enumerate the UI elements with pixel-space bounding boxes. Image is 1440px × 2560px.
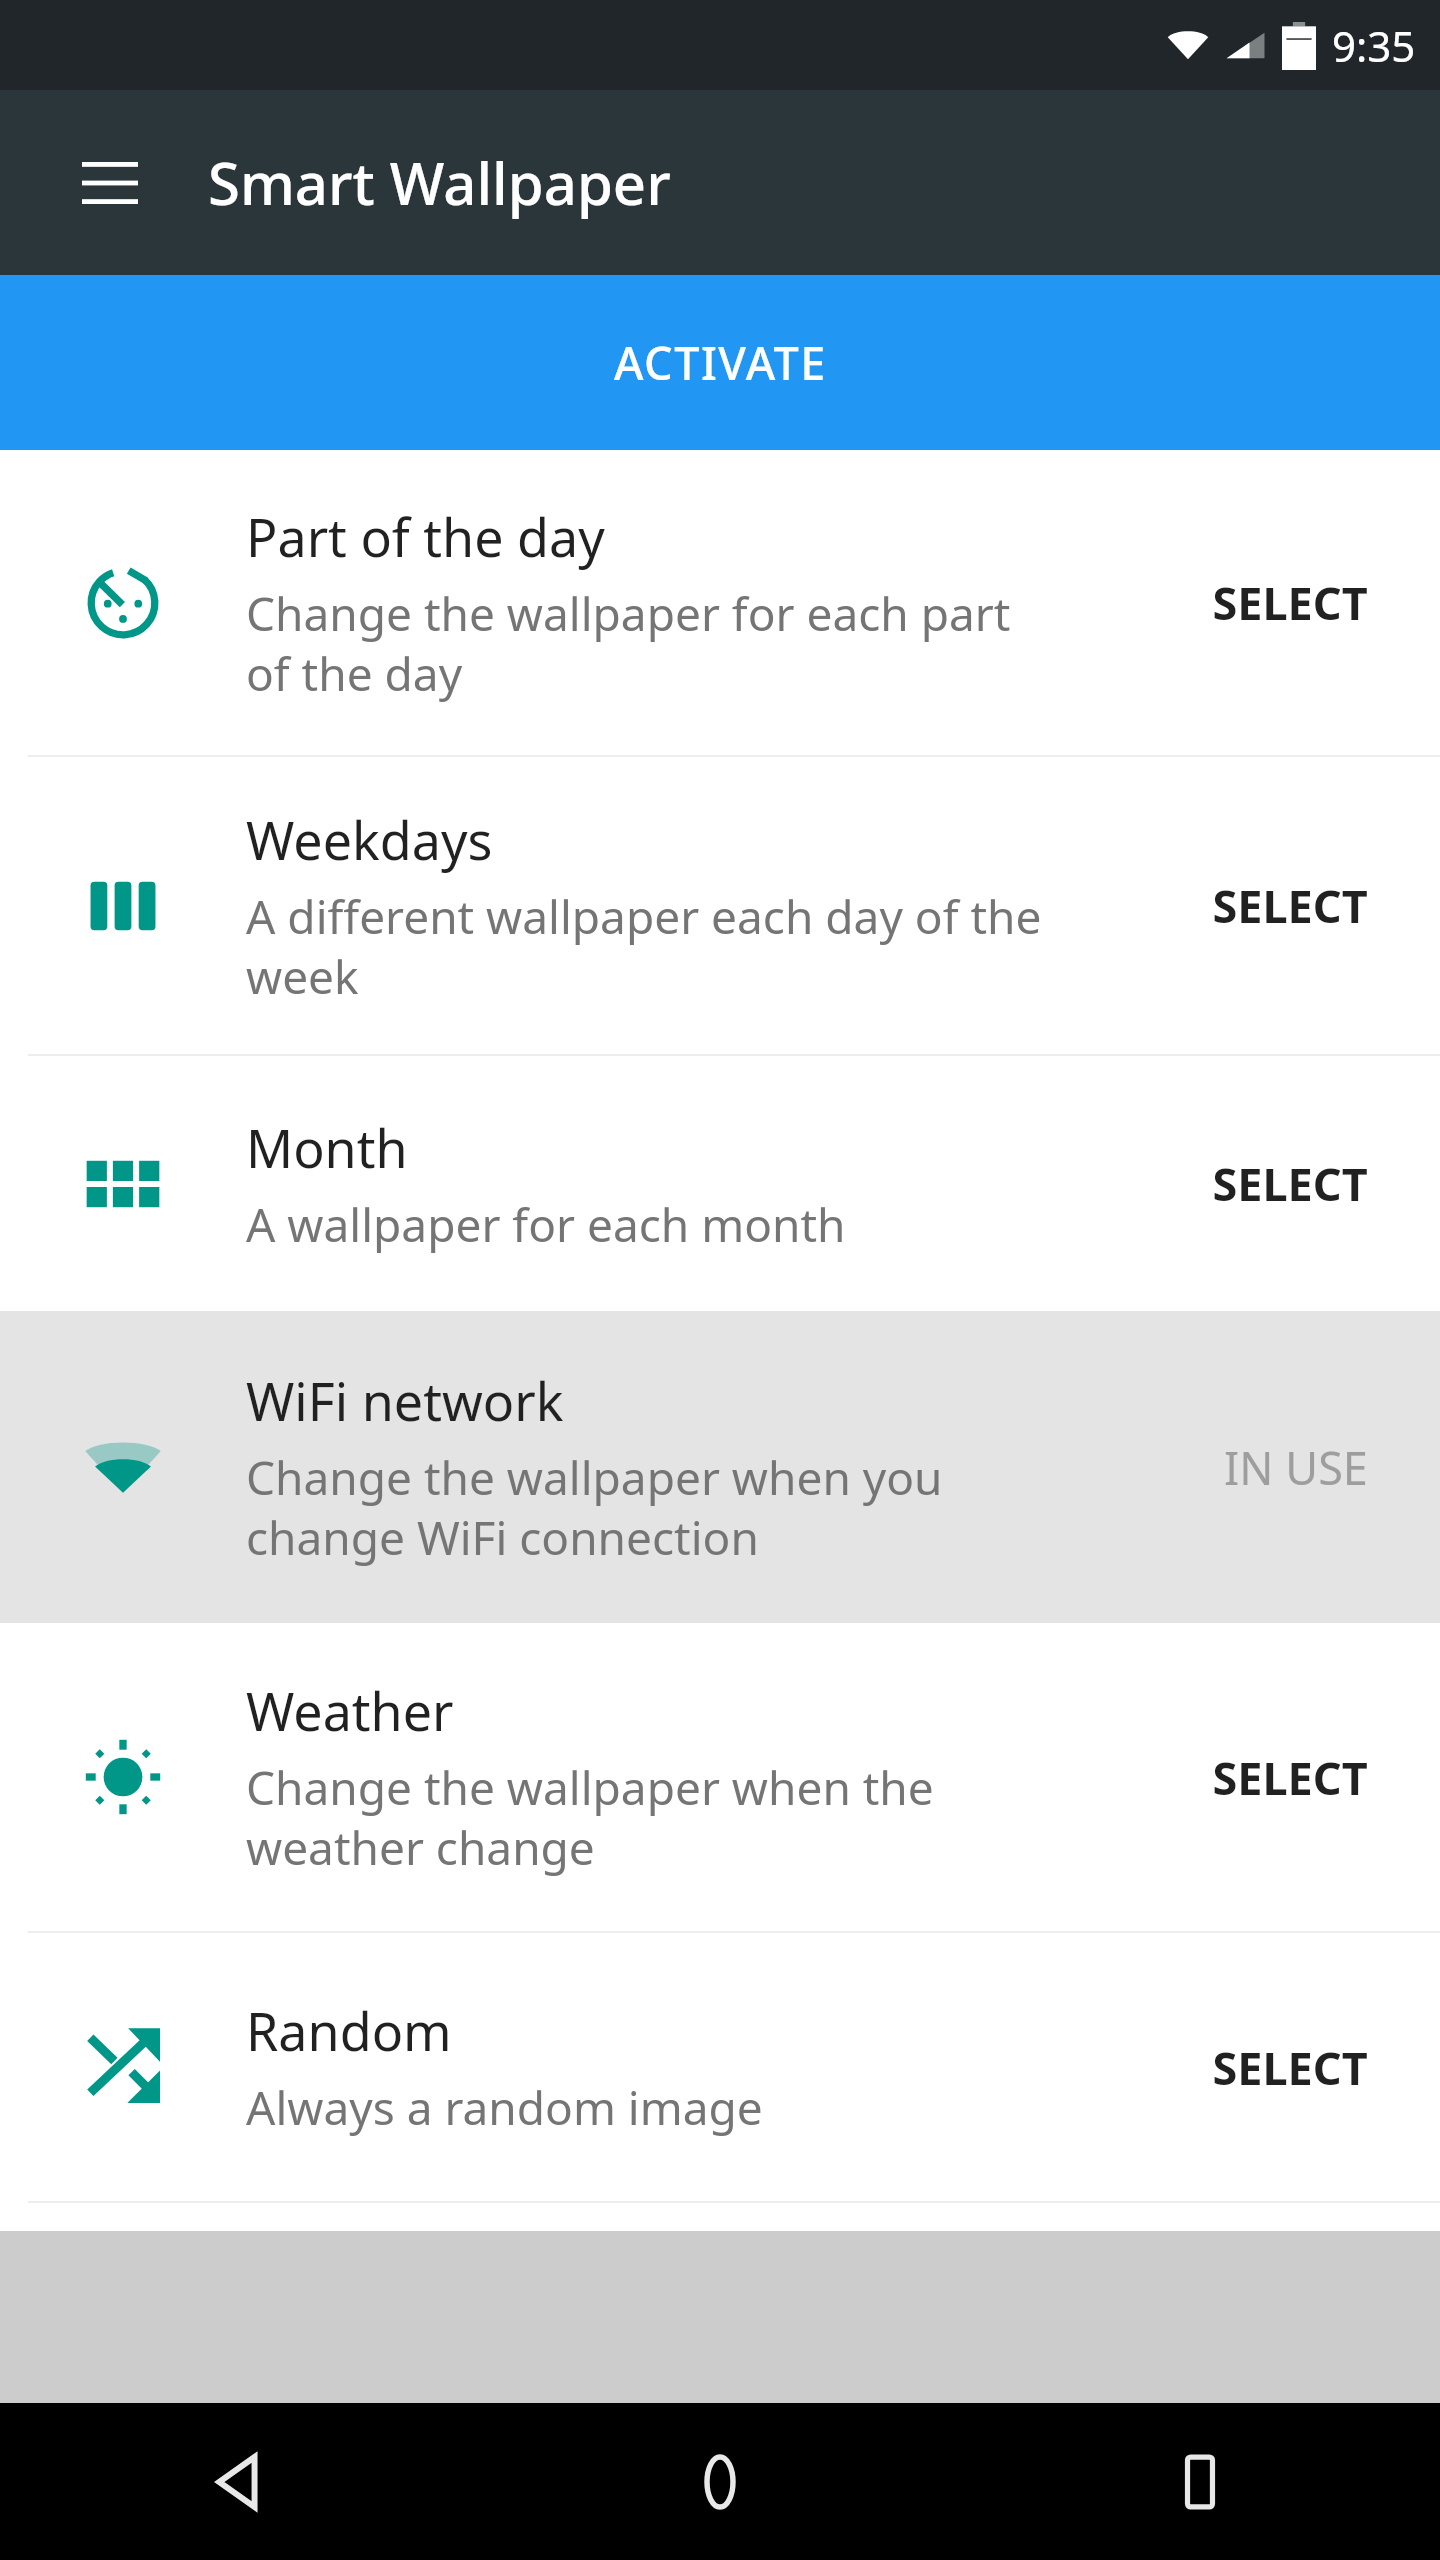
staticText: Change the wallpaper when you change WiF… <box>246 1446 943 1569</box>
staticText: Random <box>246 1995 452 2066</box>
staticText: Part of the day <box>246 501 605 572</box>
button[interactable]: ACTIVATE <box>0 275 1440 450</box>
button[interactable]: SELECT <box>1188 2019 1392 2116</box>
button[interactable]: Back <box>180 2422 300 2542</box>
button[interactable]: Open navigation menu <box>62 135 158 231</box>
staticText: A different wallpaper each day of the we… <box>246 885 1042 1008</box>
staticText: Smart Wallpaper <box>208 143 671 222</box>
staticText: SELECT <box>1212 2037 1368 2098</box>
button[interactable]: SELECT <box>1188 857 1392 954</box>
button[interactable]: Month <box>0 1056 1440 1311</box>
button[interactable]: IN USE <box>1200 1419 1392 1516</box>
staticText: WiFi network <box>246 1365 564 1436</box>
staticText: Weather <box>246 1675 454 1746</box>
staticText: SELECT <box>1212 572 1368 633</box>
staticText: 9:35 <box>1332 17 1416 74</box>
button[interactable]: WiFi network <box>0 1311 1440 1623</box>
button[interactable]: Random <box>0 1933 1440 2201</box>
staticText: ACTIVATE <box>614 332 827 393</box>
button[interactable]: SELECT <box>1188 554 1392 651</box>
button[interactable]: SELECT <box>1188 1135 1392 1232</box>
staticText: Weekdays <box>246 804 493 875</box>
staticText: A wallpaper for each month <box>246 1193 846 1256</box>
button[interactable]: SELECT <box>1188 1729 1392 1826</box>
button[interactable]: Part of the day <box>0 450 1440 755</box>
button[interactable]: Weather <box>0 1623 1440 1931</box>
staticText: SELECT <box>1212 875 1368 936</box>
button[interactable]: Home <box>660 2422 780 2542</box>
staticText: SELECT <box>1212 1747 1368 1808</box>
staticText: SELECT <box>1212 1153 1368 1214</box>
button[interactable]: Recent apps <box>1140 2422 1260 2542</box>
staticText: Change the wallpaper for each part of th… <box>246 582 1011 705</box>
staticText: Month <box>246 1112 408 1183</box>
staticText: Change the wallpaper when the weather ch… <box>246 1756 934 1879</box>
button[interactable]: Weekdays <box>0 757 1440 1054</box>
staticText: Always a random image <box>246 2076 763 2139</box>
staticText: IN USE <box>1224 1437 1368 1498</box>
